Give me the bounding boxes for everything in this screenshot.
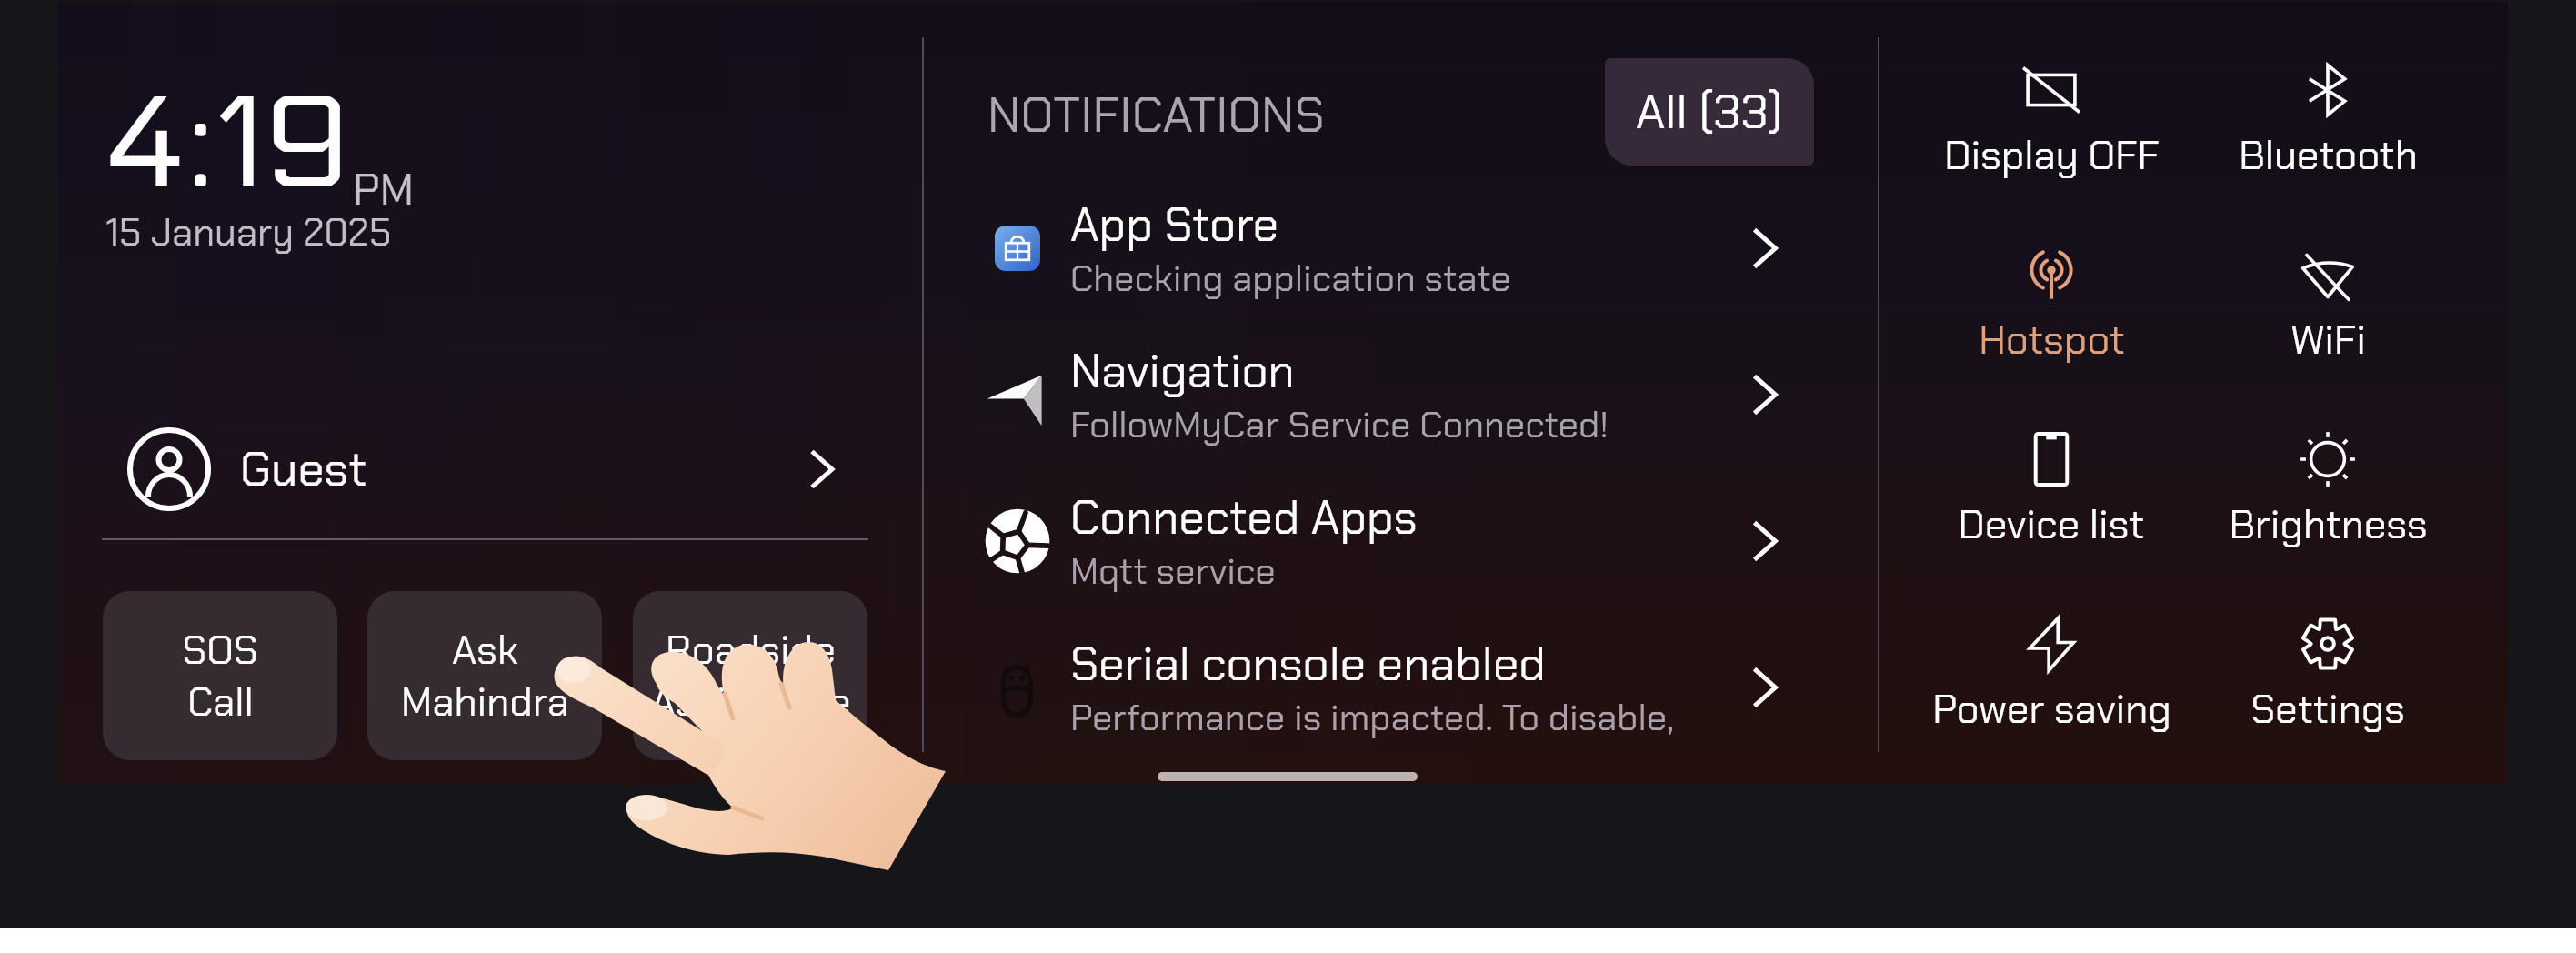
- staticText: Connected Apps: [1070, 487, 1418, 547]
- staticText: Bluetooth: [2239, 129, 2418, 181]
- staticText: 15 January 2025: [105, 207, 392, 257]
- staticText: Display OFF: [1944, 129, 2160, 181]
- staticText: SOS: [182, 624, 258, 676]
- staticText: Navigation: [1070, 341, 1295, 401]
- button[interactable]: Guest: [127, 420, 845, 518]
- staticText: App Store: [1070, 195, 1279, 255]
- button[interactable]: All (33): [1605, 58, 1814, 166]
- staticText: Checking application state: [1070, 255, 1511, 302]
- button[interactable]: Display OFF: [1915, 48, 2188, 176]
- staticText: Call: [187, 676, 254, 727]
- button[interactable]: Power saving: [1915, 602, 2188, 729]
- staticText: Settings: [2250, 683, 2405, 735]
- button[interactable]: SOS: [103, 591, 337, 760]
- button[interactable]: Settings: [2191, 602, 2464, 729]
- staticText: PM: [353, 161, 415, 217]
- button[interactable]: App Store: [957, 177, 1860, 319]
- staticText: Guest: [240, 438, 367, 500]
- staticText: Hotspot: [1979, 314, 2125, 366]
- staticText: Serial console enabled: [1070, 634, 1546, 694]
- button[interactable]: WiFi: [2191, 233, 2464, 360]
- staticText: Mahindra: [401, 676, 569, 727]
- staticText: NOTIFICATIONS: [987, 83, 1325, 146]
- staticText: WiFi: [2290, 314, 2366, 366]
- staticText: Performance is impacted. To disable,: [1070, 694, 1675, 741]
- button[interactable]: Hotspot: [1915, 233, 2188, 360]
- button[interactable]: Ask: [367, 591, 602, 760]
- staticText: Device list: [1958, 498, 2145, 550]
- staticText: Roadside: [666, 624, 836, 676]
- staticText: Assistance: [650, 676, 851, 727]
- button[interactable]: Brightness: [2191, 417, 2464, 545]
- staticText: FollowMyCar Service Connected!: [1070, 401, 1609, 448]
- staticText: Brightness: [2229, 498, 2428, 550]
- staticText: Power saving: [1932, 683, 2171, 735]
- button[interactable]: Serial console enabled: [957, 617, 1860, 758]
- button[interactable]: Navigation: [957, 324, 1860, 466]
- button[interactable]: Bluetooth: [2191, 48, 2464, 176]
- staticText: Ask: [452, 624, 518, 676]
- staticText: 4:19: [104, 70, 351, 222]
- button[interactable]: Roadside: [633, 591, 867, 760]
- staticText: Mqtt service: [1070, 547, 1276, 595]
- staticText: All (33): [1636, 81, 1783, 143]
- button[interactable]: Device list: [1915, 417, 2188, 545]
- button[interactable]: Connected Apps: [957, 470, 1860, 612]
